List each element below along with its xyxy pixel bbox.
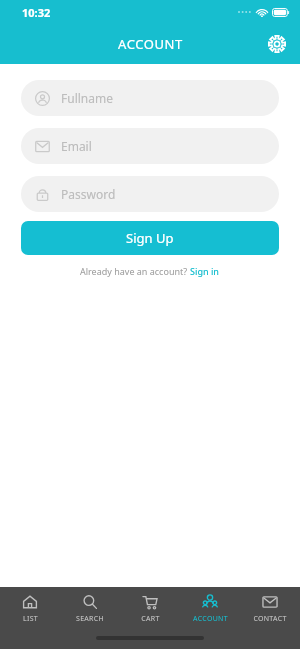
button[interactable]: CONTACT xyxy=(240,594,300,624)
staticText: CONTACT xyxy=(253,614,287,624)
staticText: Fullname xyxy=(61,90,113,106)
button[interactable]: LIST xyxy=(0,594,60,624)
staticText: Sign Up xyxy=(126,229,174,247)
button[interactable]: Sign in xyxy=(190,265,220,277)
staticText: ACCOUNT xyxy=(118,35,183,53)
staticText: ACCOUNT xyxy=(193,614,228,624)
staticText: Email xyxy=(61,138,92,154)
staticText: CART xyxy=(141,614,160,624)
button[interactable]: Settings xyxy=(260,27,294,61)
button[interactable]: Fullname xyxy=(21,80,279,116)
button[interactable]: CART xyxy=(120,594,180,624)
staticText: Already have an account? xyxy=(80,265,190,277)
button[interactable]: Password xyxy=(21,176,279,212)
staticText: Password xyxy=(61,186,116,202)
staticText: Sign in xyxy=(190,265,220,277)
staticText: SEARCH xyxy=(76,614,104,624)
button[interactable]: ACCOUNT xyxy=(180,594,240,624)
button[interactable]: Email xyxy=(21,128,279,164)
staticText: LIST xyxy=(23,614,38,624)
staticText: 10:32 xyxy=(22,5,51,20)
button[interactable]: SEARCH xyxy=(60,594,120,624)
button[interactable]: Sign Up xyxy=(21,221,279,255)
